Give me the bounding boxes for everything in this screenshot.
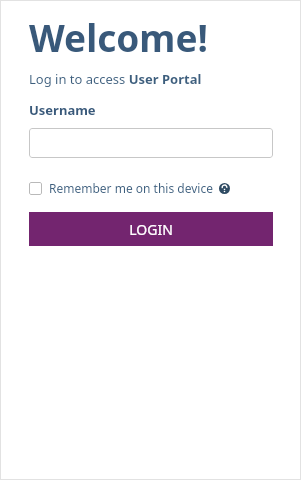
button[interactable]: Help [217,181,231,195]
button[interactable] [29,128,273,158]
button[interactable]: LOGIN [29,212,273,246]
button[interactable]: Remember me on this device [29,180,213,196]
staticText: Username [29,101,96,119]
staticText: Welcome! [29,12,208,62]
staticText: LOGIN [129,220,173,239]
staticText: Log in to access User Portal [29,70,202,88]
staticText: Remember me on this device [49,180,213,196]
